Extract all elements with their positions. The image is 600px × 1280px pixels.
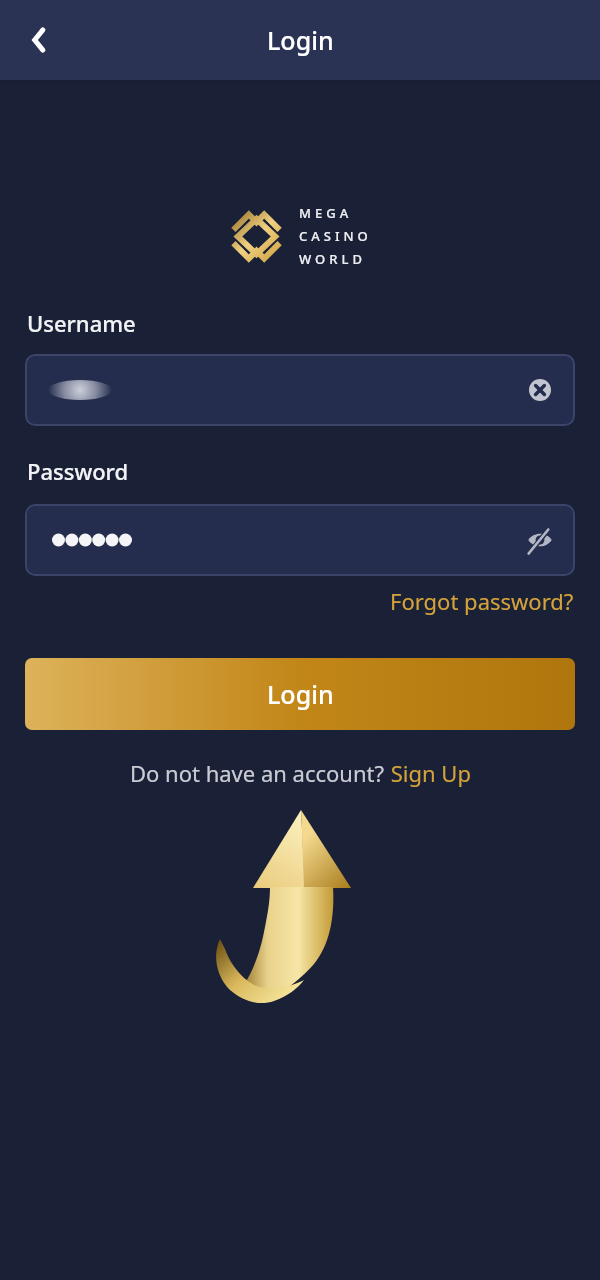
staticText: CASINO — [299, 227, 372, 245]
button[interactable] — [25, 504, 575, 576]
staticText: Password — [27, 456, 129, 486]
staticText: Do not have an account? — [130, 758, 385, 788]
staticText: Login — [267, 677, 334, 711]
button[interactable]: Login — [25, 658, 575, 730]
staticText: Login — [267, 23, 334, 57]
staticText: Username — [27, 308, 136, 338]
button[interactable] — [25, 354, 575, 426]
button[interactable]: Forgot password? — [390, 586, 574, 616]
staticText: WORLD — [299, 250, 366, 268]
button[interactable]: Sign Up — [385, 758, 471, 788]
button[interactable] — [0, 0, 80, 80]
staticText: MEGA — [299, 204, 353, 222]
